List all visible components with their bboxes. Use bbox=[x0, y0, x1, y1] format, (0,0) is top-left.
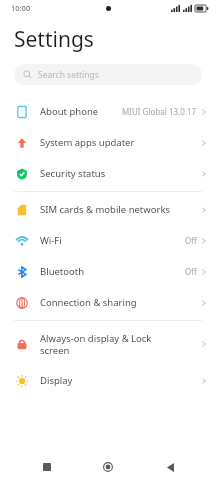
staticText: Search settings bbox=[38, 69, 99, 81]
staticText: Off bbox=[185, 235, 197, 246]
staticText: 10:00 bbox=[11, 3, 31, 13]
staticText: Bluetooth bbox=[40, 265, 185, 278]
staticText: Always-on display & Lock screen bbox=[40, 332, 201, 357]
button[interactable]: Recent apps bbox=[32, 454, 62, 480]
button[interactable]: Bluetooth bbox=[0, 256, 216, 287]
staticText: Connection & sharing bbox=[40, 296, 201, 309]
staticText: Settings bbox=[14, 25, 94, 54]
staticText: System apps updater bbox=[40, 136, 201, 149]
staticText: Display bbox=[40, 374, 201, 387]
button[interactable]: System apps updater bbox=[0, 127, 216, 158]
staticText: Security status bbox=[40, 167, 201, 180]
staticText: MIUI Global 13.0.17 bbox=[122, 106, 197, 117]
button[interactable]: Always-on display & Lock screen bbox=[0, 323, 216, 365]
button[interactable]: Display bbox=[0, 365, 216, 396]
button[interactable]: Security status bbox=[0, 158, 216, 189]
button[interactable]: SIM cards & mobile networks bbox=[0, 194, 216, 225]
button[interactable]: Connection & sharing bbox=[0, 287, 216, 318]
button[interactable]: Back bbox=[155, 454, 185, 480]
button[interactable]: Search settings bbox=[14, 64, 202, 85]
staticText: About phone bbox=[40, 105, 122, 118]
staticText: Off bbox=[185, 266, 197, 277]
staticText: SIM cards & mobile networks bbox=[40, 203, 201, 216]
button[interactable]: About phone bbox=[0, 96, 216, 127]
staticText: Wi-Fi bbox=[40, 234, 185, 247]
button[interactable]: Home bbox=[93, 454, 123, 480]
button[interactable]: Wi-Fi bbox=[0, 225, 216, 256]
